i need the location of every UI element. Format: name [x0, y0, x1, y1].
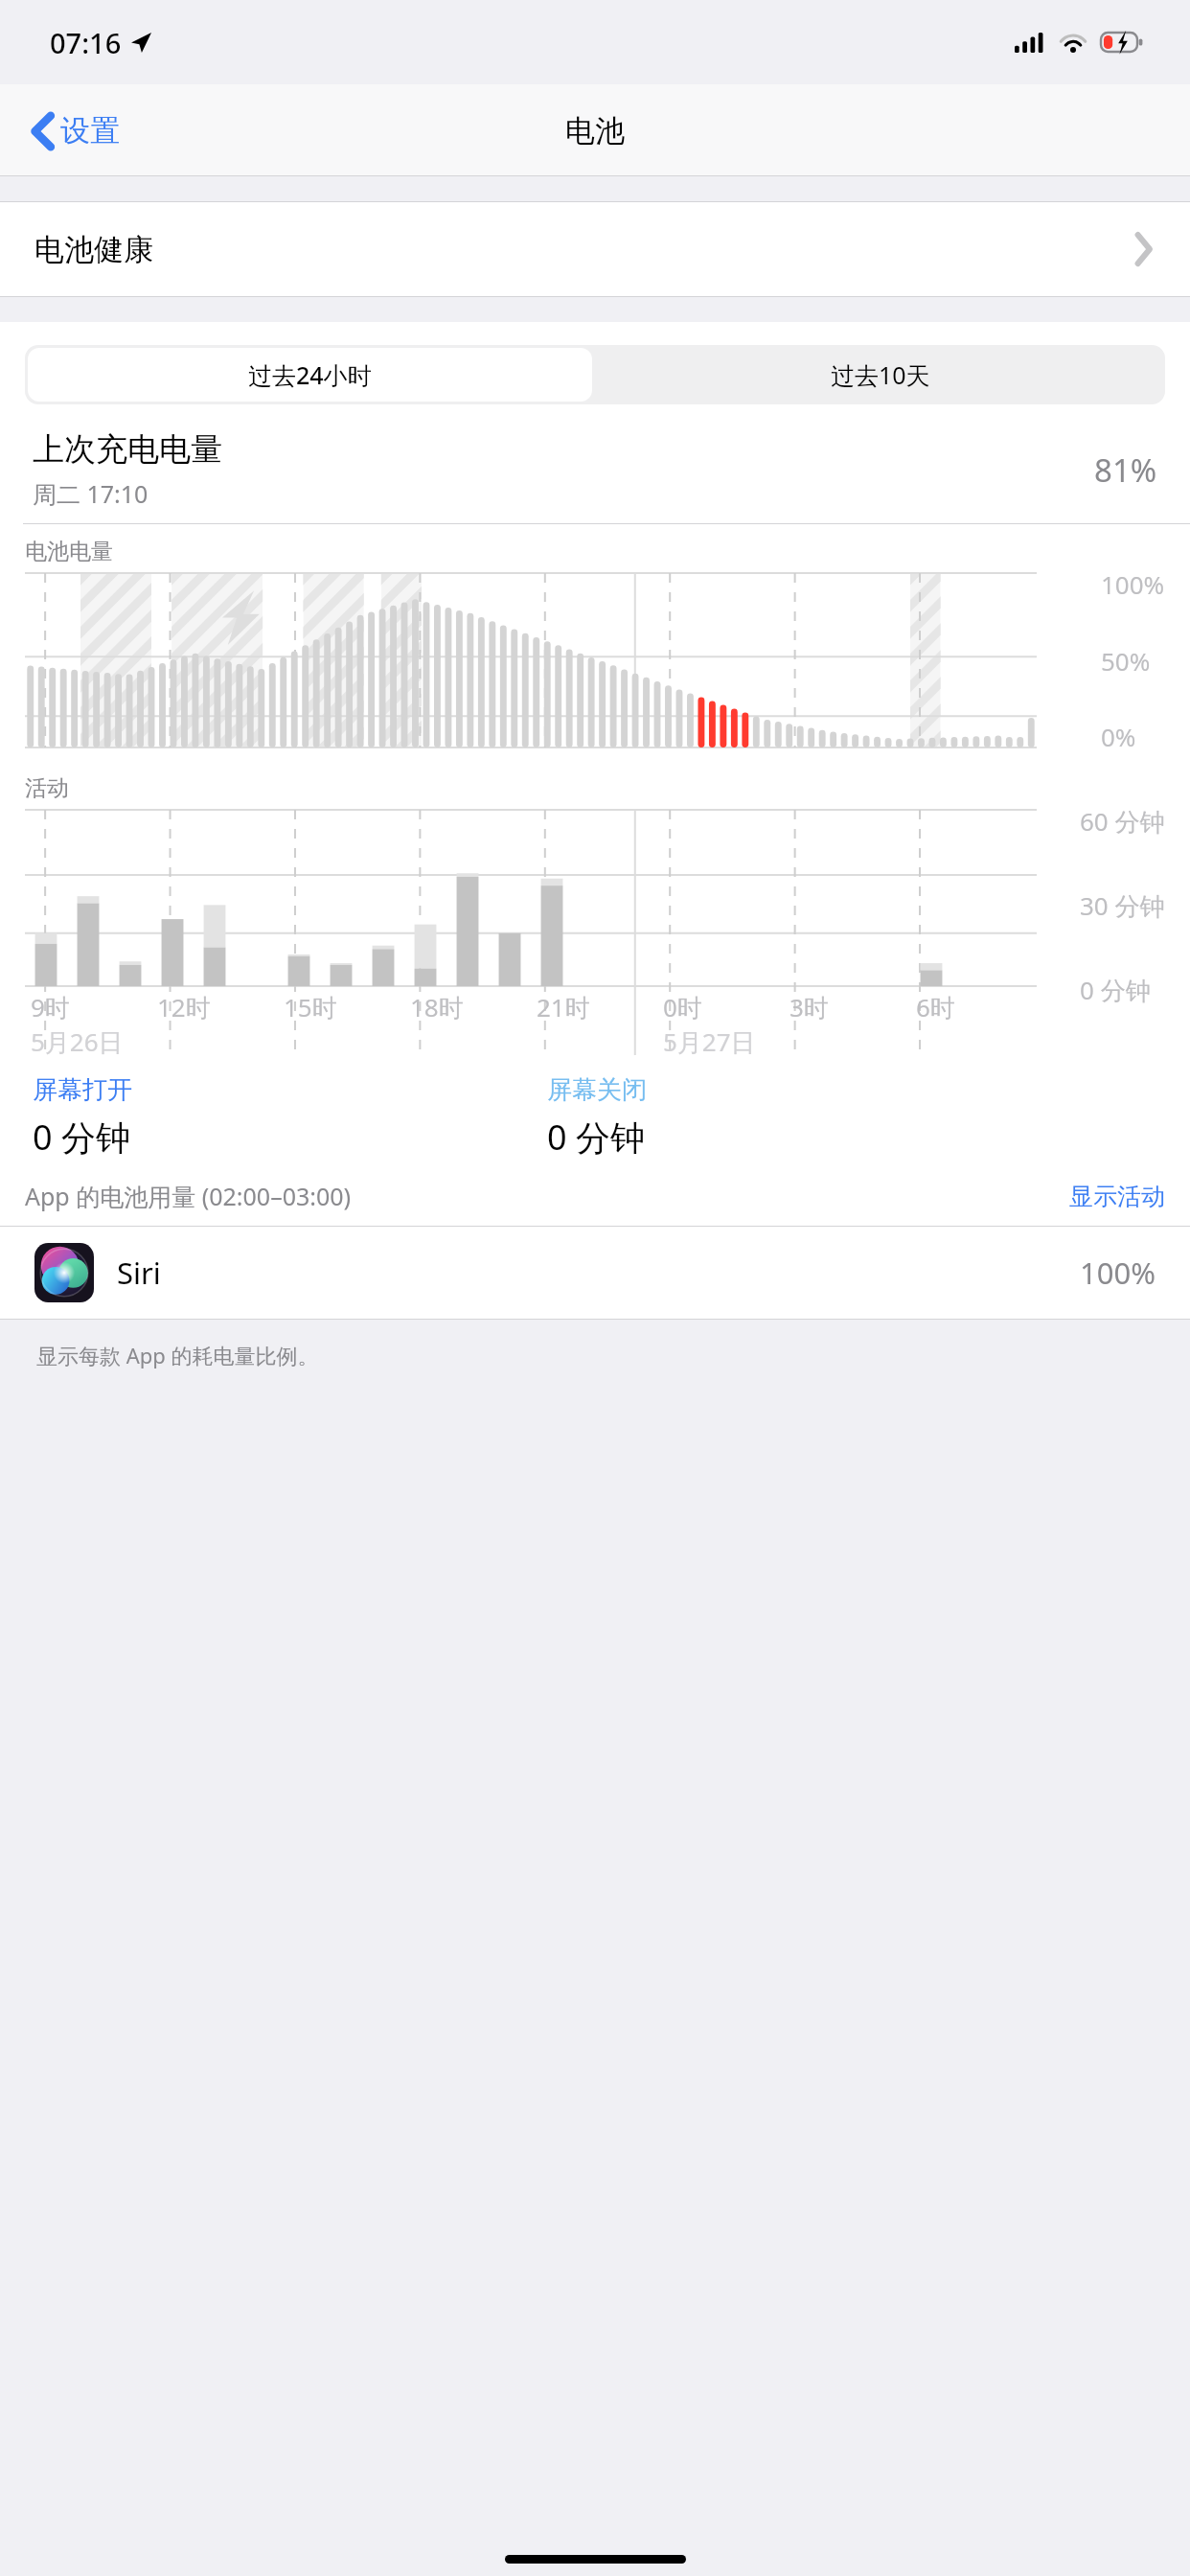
staticText: 50% [1101, 644, 1151, 678]
staticText: 过去10天 [831, 358, 930, 391]
button[interactable]: 设置 [25, 103, 127, 159]
staticText: 周二 17:10 [33, 477, 149, 510]
staticText: 5月26日 [31, 1024, 124, 1059]
staticText: 07:16 [50, 24, 122, 61]
button[interactable]: 过去24小时 [28, 348, 592, 402]
staticText: 上次充电电量 [33, 429, 222, 470]
button[interactable]: 电池健康 [0, 201, 1190, 297]
button[interactable]: 显示活动 [1069, 1182, 1165, 1211]
staticText: 0 分钟 [547, 1114, 645, 1161]
staticText: 屏幕关闭 [547, 1074, 647, 1106]
button[interactable]: Siri [0, 1227, 1190, 1319]
staticText: App 的电池用量 (02:00–03:00) [25, 1180, 1069, 1212]
staticText: 6时 [916, 990, 955, 1024]
staticText: 3时 [790, 990, 829, 1024]
staticText: 9时 [31, 990, 70, 1024]
staticText: 12时 [157, 990, 211, 1024]
staticText: 过去24小时 [248, 358, 372, 391]
button[interactable]: 过去10天 [595, 345, 1165, 404]
staticText: Siri [117, 1253, 1080, 1293]
staticText: 显示每款 App 的耗电量比例。 [36, 1341, 319, 1369]
staticText: 18时 [410, 990, 464, 1024]
staticText: 设置 [60, 112, 120, 149]
staticText: 15时 [284, 990, 337, 1024]
staticText: 显示活动 [1069, 1182, 1165, 1211]
staticText: 0% [1101, 720, 1136, 753]
staticText: 电池健康 [34, 231, 153, 268]
staticText: 81% [1094, 448, 1157, 492]
staticText: 0 分钟 [1080, 973, 1151, 1007]
staticText: 30 分钟 [1080, 888, 1165, 923]
staticText: 0 分钟 [33, 1114, 130, 1161]
staticText: 屏幕打开 [33, 1074, 132, 1106]
staticText: 活动 [25, 774, 69, 802]
staticText: 电池电量 [25, 538, 113, 565]
staticText: 5月27日 [663, 1024, 756, 1059]
staticText: 100% [1080, 1253, 1156, 1293]
staticText: 60 分钟 [1080, 804, 1165, 839]
staticText: 100% [1101, 567, 1165, 601]
staticText: 0时 [663, 990, 702, 1024]
staticText: 电池 [565, 112, 625, 149]
staticText: 21时 [537, 990, 590, 1024]
